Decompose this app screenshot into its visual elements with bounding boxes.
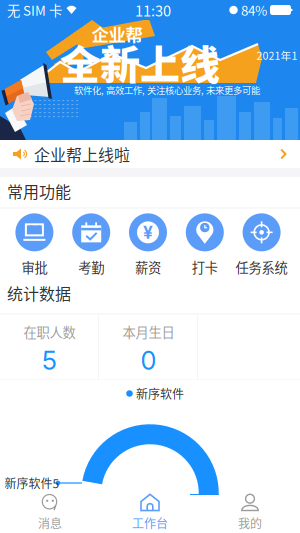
staticText: 无 SIM 卡 [7,0,62,20]
staticText: 工作台 [132,514,168,532]
staticText: 0 [140,345,156,376]
staticText: ¥ [143,222,153,243]
staticText: 新序软件5 [4,474,59,492]
staticText: OA [27,223,42,236]
staticText: 2021年1 [256,47,297,63]
staticText: 企业帮上线啦 [34,142,130,166]
staticText: 新序软件 [136,385,184,402]
button[interactable]: 考勤 [63,213,120,277]
staticText: 软件化, 高效工作, 关注核心业务, 未来更多可能 [74,83,260,97]
staticText: 薪资 [135,257,161,277]
staticText: 11:30 [135,0,171,21]
staticText: 统计数据 [7,281,71,305]
staticText: 消息 [38,514,62,532]
staticText: 打卡 [192,257,218,277]
staticText: 任务系统 [236,257,288,277]
staticText: 考勤 [78,257,104,277]
button[interactable]: 我的 [200,495,300,533]
button[interactable]: ¥ [120,213,176,277]
button[interactable]: 打卡 [176,213,233,277]
staticText: 审批 [21,257,47,277]
staticText: 我的 [238,514,262,532]
staticText: 企业帮 [91,21,142,47]
staticText: 全新上线 [60,33,220,91]
staticText: 常用功能 [7,179,71,203]
staticText: 本月生日 [122,322,174,341]
button[interactable]: 消息 [0,495,100,533]
button[interactable]: OA [6,213,63,277]
staticText: 84% [241,0,267,20]
button[interactable]: 任务系统 [233,213,290,277]
button[interactable]: 工作台 [100,495,200,533]
button[interactable]: 企业帮上线啦 [0,140,300,168]
staticText: 在职人数 [23,322,75,341]
staticText: 5 [42,345,57,376]
